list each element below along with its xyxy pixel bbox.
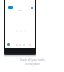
staticText: in one place (25, 62, 40, 66)
button[interactable] (8, 6, 13, 9)
button[interactable]: Add (7, 43, 10, 46)
staticText: Track all your tasks (20, 58, 45, 62)
